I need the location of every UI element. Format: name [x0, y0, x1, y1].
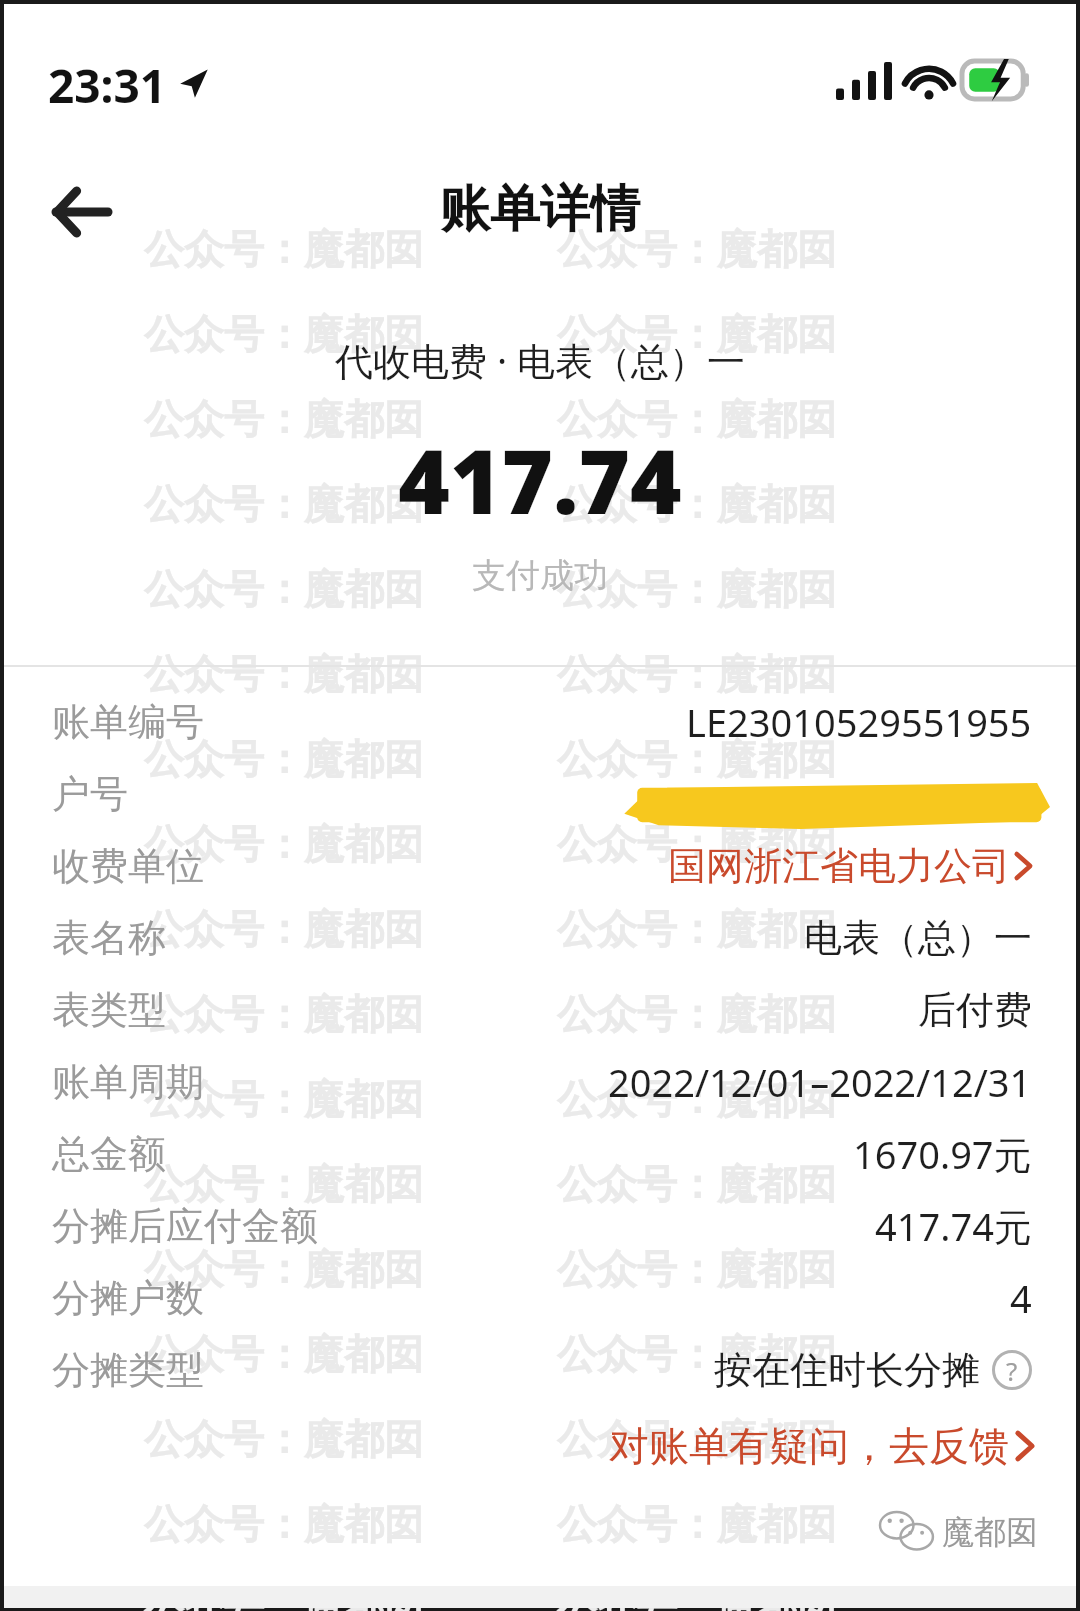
- staticText: 公众号：魔都囡: [144, 1074, 424, 1124]
- staticText: 1670.97元: [853, 1128, 1032, 1180]
- staticText: 公众号：魔都囡: [144, 819, 424, 869]
- staticText: 公众号：魔都囡: [557, 1329, 837, 1379]
- staticText: 户号: [52, 770, 128, 818]
- staticText: ?: [1006, 1353, 1018, 1388]
- button[interactable]: 返回: [28, 160, 132, 264]
- staticText: 4: [1010, 1272, 1032, 1324]
- staticText: 公众号：魔都囡: [557, 989, 837, 1039]
- staticText: 按在住时长分摊: [714, 1346, 980, 1394]
- staticText: 对账单有疑问，去反馈: [609, 1421, 1009, 1471]
- staticText: 公众号：魔都囡: [144, 309, 424, 359]
- staticText: 公众号：魔都囡: [557, 224, 837, 274]
- staticText: 公众号：魔都囡: [557, 1584, 837, 1611]
- staticText: 支付成功: [472, 554, 608, 597]
- staticText: 公众号：魔都囡: [144, 734, 424, 784]
- staticText: 公众号：魔都囡: [557, 904, 837, 954]
- staticText: 417.74: [398, 420, 682, 540]
- staticText: 公众号：魔都囡: [144, 564, 424, 614]
- staticText: 分摊类型: [52, 1346, 204, 1394]
- staticText: 23:31: [48, 54, 167, 117]
- staticText: 公众号：魔都囡: [144, 649, 424, 699]
- staticText: 公众号：魔都囡: [144, 479, 424, 529]
- staticText: 公众号：魔都囡: [557, 819, 837, 869]
- staticText: 公众号：魔都囡: [144, 1499, 424, 1549]
- staticText: 账单周期: [52, 1058, 204, 1106]
- staticText: 分摊户数: [52, 1274, 204, 1322]
- staticText: 2022/12/01–2022/12/31: [608, 1056, 1032, 1108]
- staticText: 公众号：魔都囡: [144, 1329, 424, 1379]
- staticText: 公众号：魔都囡: [557, 734, 837, 784]
- other: 说明: [992, 1350, 1032, 1390]
- staticText: 公众号：魔都囡: [557, 1074, 837, 1124]
- staticText: 公众号：魔都囡: [144, 989, 424, 1039]
- staticText: 账单编号: [52, 698, 204, 746]
- staticText: 后付费: [918, 986, 1032, 1034]
- staticText: 代收电费 · 电表（总）一: [335, 334, 745, 386]
- staticText: 公众号：魔都囡: [557, 394, 837, 444]
- staticText: 魔都囡: [942, 1512, 1038, 1552]
- staticText: 417.74元: [875, 1200, 1032, 1252]
- staticText: 国网浙江省电力公司: [668, 842, 1010, 890]
- staticText: 公众号：魔都囡: [557, 1499, 837, 1549]
- button[interactable]: 收费单位: [4, 830, 1076, 902]
- staticText: 公众号：魔都囡: [557, 564, 837, 614]
- button[interactable]: 对账单有疑问，去反馈: [4, 1408, 1076, 1484]
- staticText: 表类型: [52, 986, 166, 1034]
- staticText: 公众号：魔都囡: [144, 1414, 424, 1464]
- staticText: 公众号：魔都囡: [144, 394, 424, 444]
- staticText: 公众号：魔都囡: [144, 224, 424, 274]
- staticText: 公众号：魔都囡: [557, 1414, 837, 1464]
- staticText: 公众号：魔都囡: [557, 1244, 837, 1294]
- staticText: 公众号：魔都囡: [144, 1584, 424, 1611]
- staticText: 公众号：魔都囡: [144, 1244, 424, 1294]
- button[interactable]: 分摊类型: [4, 1334, 1076, 1406]
- staticText: 账单详情: [4, 178, 1076, 241]
- staticText: 公众号：魔都囡: [557, 479, 837, 529]
- staticText: LE23010529551955: [686, 696, 1032, 748]
- staticText: 分摊后应付金额: [52, 1202, 318, 1250]
- staticText: 公众号：魔都囡: [144, 904, 424, 954]
- staticText: 收费单位: [52, 842, 204, 890]
- staticText: 总金额: [52, 1130, 166, 1178]
- staticText: 表名称: [52, 914, 166, 962]
- staticText: 公众号：魔都囡: [557, 1159, 837, 1209]
- staticText: 公众号：魔都囡: [557, 309, 837, 359]
- staticText: 电表（总）一: [804, 914, 1032, 962]
- staticText: 公众号：魔都囡: [144, 1159, 424, 1209]
- staticText: 公众号：魔都囡: [557, 649, 837, 699]
